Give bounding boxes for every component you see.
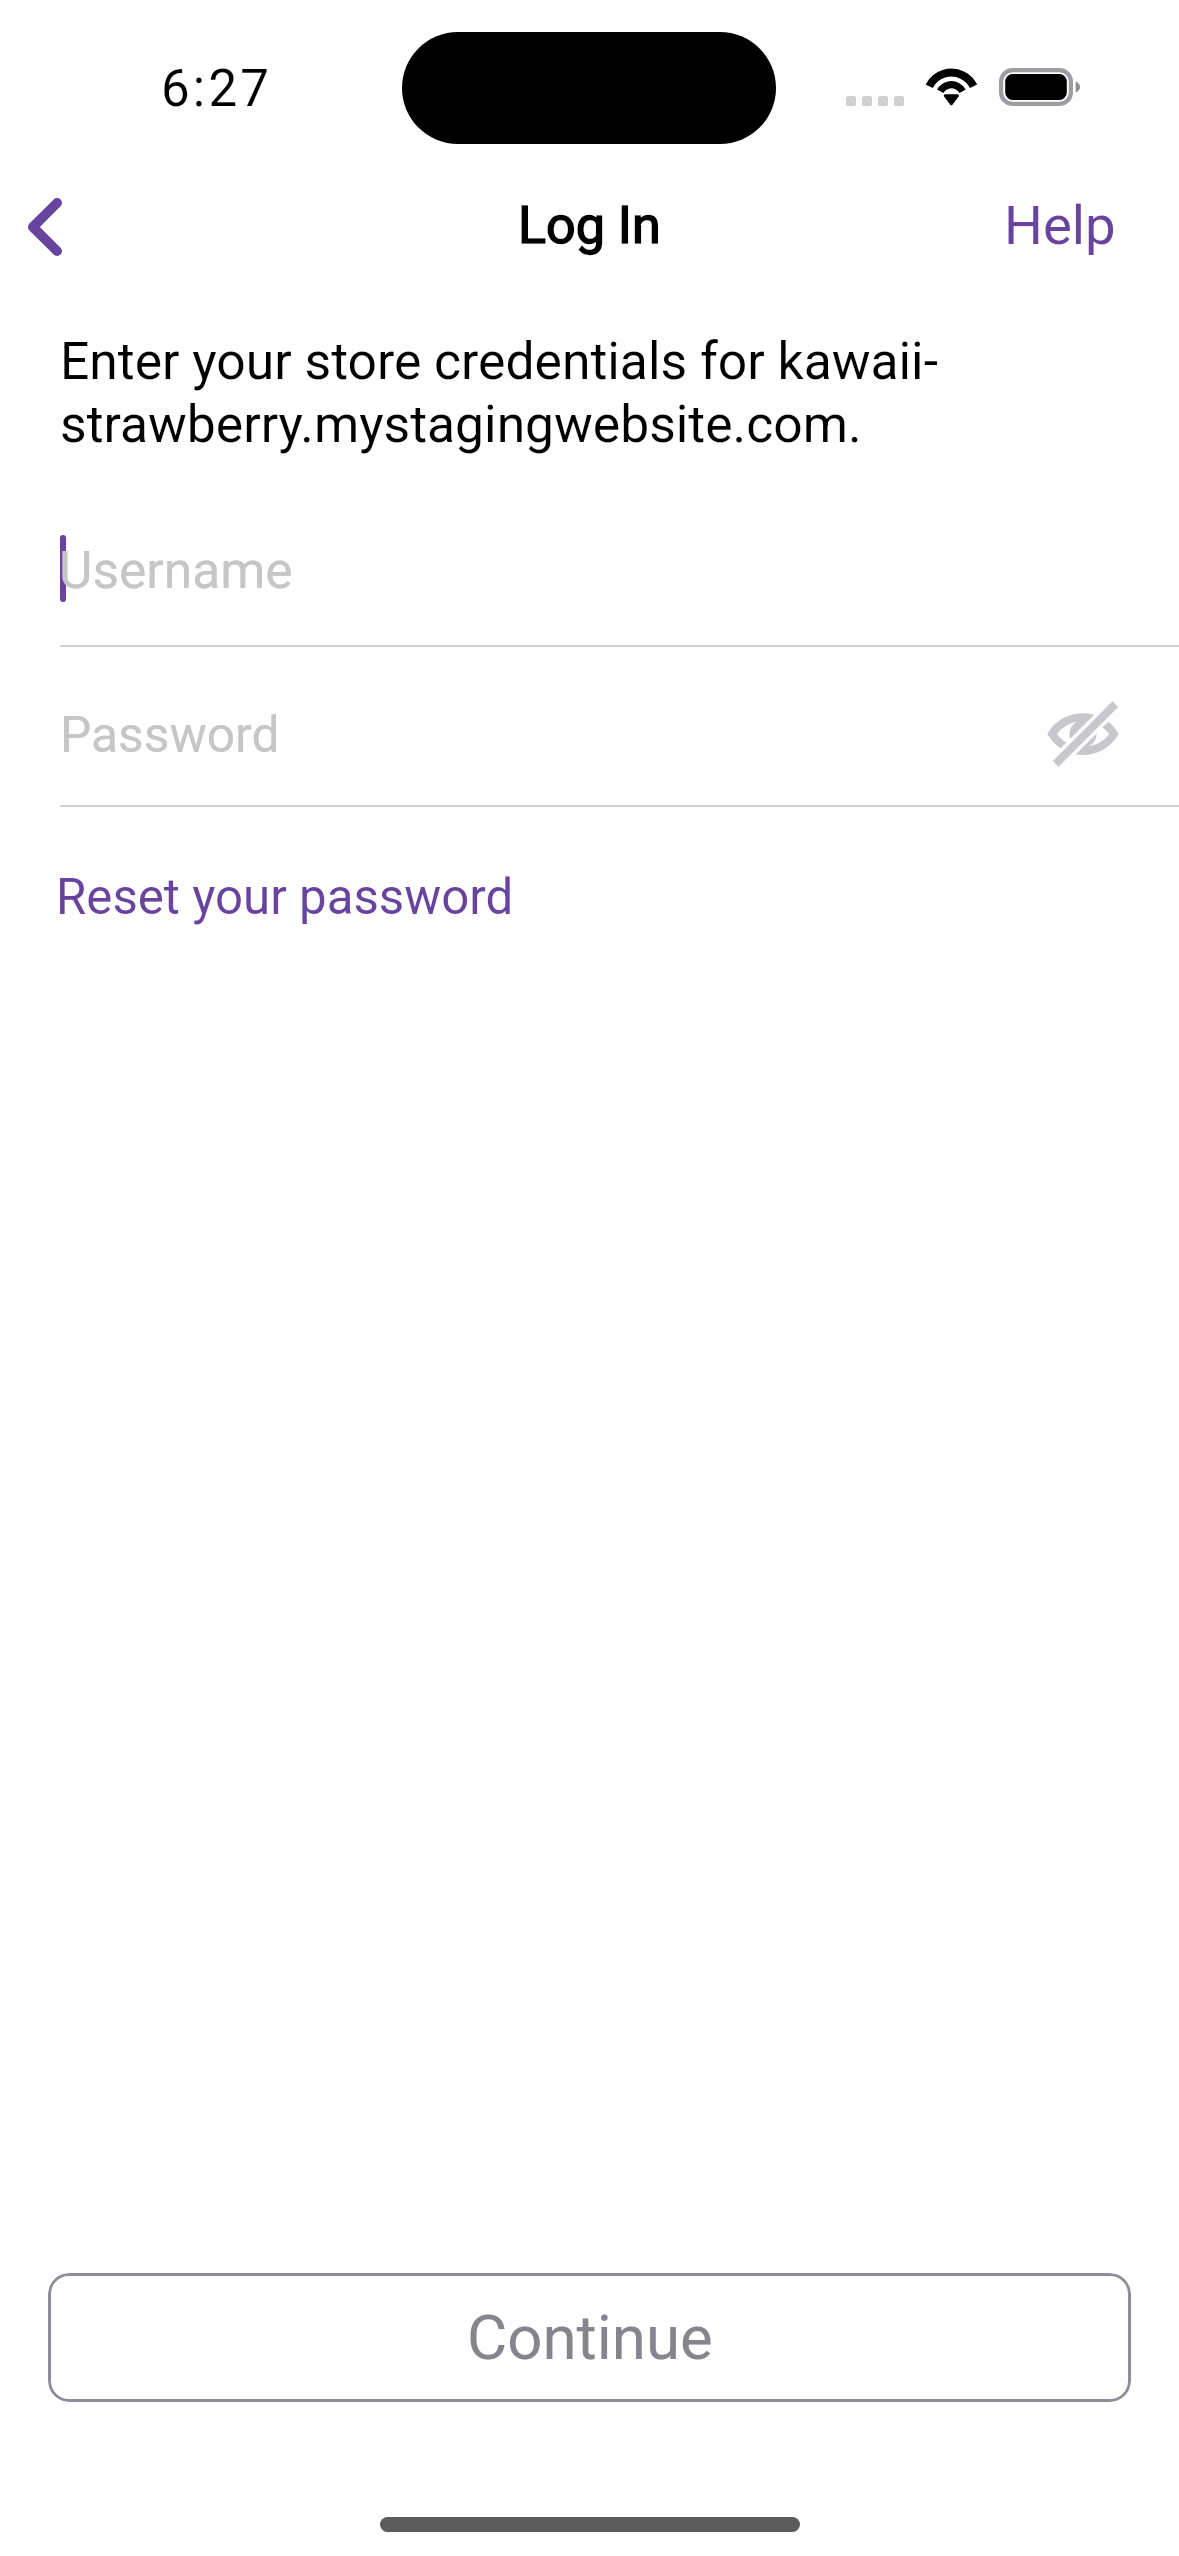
button[interactable]: Username bbox=[0, 500, 1179, 646]
button[interactable]: Back bbox=[0, 170, 100, 280]
staticText: Username bbox=[59, 540, 293, 600]
staticText: Enter your store credentials for kawaii-… bbox=[60, 331, 1060, 454]
button[interactable]: Password bbox=[0, 648, 1179, 806]
staticText: Reset your password bbox=[56, 868, 514, 926]
staticText: Log In bbox=[518, 195, 661, 256]
button[interactable]: Help bbox=[1004, 170, 1116, 280]
button[interactable]: Show password bbox=[1028, 679, 1138, 789]
staticText: Password bbox=[60, 706, 280, 764]
staticText: Continue bbox=[467, 2302, 713, 2374]
staticText: Help bbox=[1004, 193, 1116, 257]
button[interactable]: Reset your password bbox=[56, 868, 514, 926]
button[interactable]: Continue bbox=[48, 2273, 1131, 2402]
staticText: 6:27 bbox=[161, 59, 273, 119]
